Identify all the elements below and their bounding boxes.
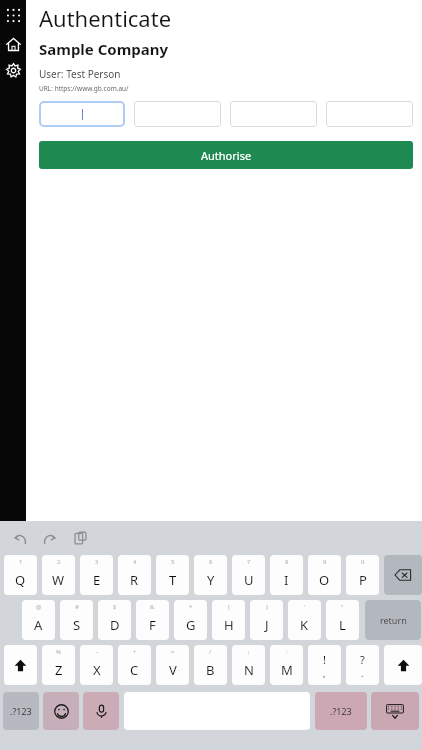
button[interactable]: 8 xyxy=(270,555,303,595)
staticText: 9 xyxy=(323,558,327,566)
button[interactable]: # xyxy=(60,600,93,640)
button[interactable]: 1 xyxy=(4,555,37,595)
button[interactable]: Undo xyxy=(9,527,31,549)
button[interactable]: ? xyxy=(346,645,379,685)
button[interactable]: Emoji xyxy=(43,692,79,730)
staticText: & xyxy=(150,603,155,611)
button[interactable]: / xyxy=(194,645,227,685)
staticText: Sample Company xyxy=(39,39,169,59)
button[interactable]: 7 xyxy=(232,555,265,595)
staticText: T xyxy=(169,571,177,589)
staticText: E xyxy=(93,571,101,589)
staticText: URL: https://www.gb.com.au/ xyxy=(39,84,129,93)
staticText: = xyxy=(171,648,175,656)
staticText: 1 xyxy=(19,558,23,566)
staticText: O xyxy=(319,571,330,589)
staticText: ( xyxy=(228,603,230,611)
button[interactable]: Hide keyboard xyxy=(371,692,419,730)
button[interactable]: 4 xyxy=(118,555,151,595)
staticText: - xyxy=(96,648,98,656)
staticText: R xyxy=(130,571,139,589)
staticText: B xyxy=(206,661,215,679)
staticText: + xyxy=(133,648,137,656)
button[interactable]: 2 xyxy=(42,555,75,595)
staticText: Z xyxy=(55,661,63,679)
staticText: return xyxy=(380,614,407,626)
staticText: 6 xyxy=(209,558,213,566)
staticText: " xyxy=(341,603,344,611)
staticText: / xyxy=(209,648,212,656)
staticText: S xyxy=(73,616,81,634)
staticText: 5 xyxy=(171,558,175,566)
staticText: H xyxy=(224,616,234,634)
button[interactable]: Shift xyxy=(384,645,422,685)
button[interactable]: @ xyxy=(22,600,55,640)
staticText: ? xyxy=(360,652,365,667)
staticText: Authorise xyxy=(201,148,252,163)
button[interactable]: " xyxy=(326,600,359,640)
button[interactable]: Authorise xyxy=(39,141,413,169)
staticText: .?123 xyxy=(10,705,32,717)
staticText: ! xyxy=(323,652,326,667)
staticText: V xyxy=(169,661,177,679)
button[interactable] xyxy=(230,101,317,127)
button[interactable]: ' xyxy=(288,600,321,640)
button[interactable]: * xyxy=(174,600,207,640)
staticText: Authenticate xyxy=(39,3,172,33)
button[interactable]: : xyxy=(270,645,303,685)
button[interactable]: + xyxy=(118,645,151,685)
button[interactable]: Symbols xyxy=(315,692,367,730)
button[interactable]: ; xyxy=(232,645,265,685)
button[interactable]: 5 xyxy=(156,555,189,595)
button[interactable]: 6 xyxy=(194,555,227,595)
staticText: , xyxy=(323,667,326,679)
button[interactable]: Paste xyxy=(69,527,91,549)
staticText: 7 xyxy=(247,558,251,566)
staticText: M xyxy=(281,661,293,679)
button[interactable]: Symbols xyxy=(3,692,39,730)
button[interactable]: 0 xyxy=(346,555,379,595)
button[interactable]: Apps xyxy=(2,4,24,26)
staticText: 3 xyxy=(95,558,99,566)
staticText: W xyxy=(52,571,65,589)
button[interactable]: = xyxy=(156,645,189,685)
button[interactable]: Backspace xyxy=(384,555,422,595)
button[interactable]: ! xyxy=(308,645,341,685)
staticText: . xyxy=(361,667,364,679)
button[interactable]: Voice input xyxy=(83,692,119,730)
staticText: ) xyxy=(266,603,268,611)
staticText: J xyxy=(265,616,269,634)
staticText: ' xyxy=(304,603,306,611)
staticText: 2 xyxy=(57,558,61,566)
staticText: # xyxy=(75,603,79,611)
staticText: L xyxy=(339,616,346,634)
staticText: N xyxy=(244,661,254,679)
button[interactable]: ( xyxy=(212,600,245,640)
button[interactable]: 9 xyxy=(308,555,341,595)
button[interactable]: Home xyxy=(2,33,24,55)
button[interactable]: ) xyxy=(250,600,283,640)
staticText: A xyxy=(34,616,43,634)
button[interactable] xyxy=(41,103,123,125)
button[interactable]: - xyxy=(80,645,113,685)
staticText: K xyxy=(300,616,309,634)
staticText: ; xyxy=(248,648,250,656)
staticText: I xyxy=(284,571,289,589)
staticText: X xyxy=(93,661,101,679)
button[interactable] xyxy=(134,101,221,127)
button[interactable]: Return xyxy=(365,600,421,640)
staticText: $ xyxy=(113,603,117,611)
button[interactable]: & xyxy=(136,600,169,640)
staticText: 0 xyxy=(361,558,365,566)
button[interactable]: 3 xyxy=(80,555,113,595)
staticText: G xyxy=(186,616,196,634)
button[interactable]: $ xyxy=(98,600,131,640)
staticText: .?123 xyxy=(330,705,352,717)
button[interactable]: Shift xyxy=(4,645,37,685)
staticText: User: Test Person xyxy=(39,67,121,81)
button[interactable]: Settings xyxy=(2,59,24,81)
button[interactable]: % xyxy=(42,645,75,685)
button[interactable]: Redo xyxy=(38,527,60,549)
button[interactable] xyxy=(326,101,413,127)
